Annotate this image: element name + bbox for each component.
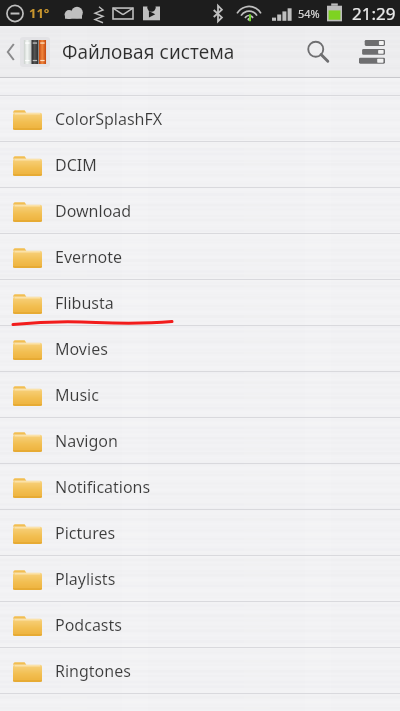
button[interactable]: Evernote	[0, 234, 400, 280]
staticText: Download	[55, 200, 132, 222]
staticText: Ringtones	[55, 660, 131, 682]
button[interactable]: Notifications	[0, 464, 400, 510]
button[interactable]: Pictures	[0, 510, 400, 556]
button[interactable]: Playlists	[0, 556, 400, 602]
button[interactable]: Movies	[0, 326, 400, 372]
button[interactable]: Download	[0, 188, 400, 234]
staticText: Evernote	[55, 246, 123, 268]
staticText: ColorSplashFX	[55, 108, 163, 130]
button[interactable]: Back	[0, 26, 54, 78]
staticText: Movies	[55, 338, 108, 360]
button[interactable]: Podcasts	[0, 602, 400, 648]
staticText: Music	[55, 384, 99, 406]
button[interactable]: Music	[0, 372, 400, 418]
staticText: 54%	[298, 6, 320, 21]
staticText: Navigon	[55, 430, 118, 452]
staticText: Pictures	[55, 522, 116, 544]
staticText: Flibusta	[55, 292, 114, 314]
button[interactable]: ColorSplashFX	[0, 96, 400, 142]
button[interactable]: DCIM	[0, 142, 400, 188]
staticText: Notifications	[55, 476, 151, 498]
staticText: 21:29	[352, 2, 396, 25]
staticText: Playlists	[55, 568, 116, 590]
staticText: 11°	[29, 4, 50, 22]
button[interactable]: Ringtones	[0, 648, 400, 694]
button[interactable]: Navigon	[0, 418, 400, 464]
button[interactable]: Library	[344, 26, 400, 78]
staticText: Файловая система	[62, 39, 292, 65]
button[interactable]: Search	[292, 26, 344, 78]
staticText: Podcasts	[55, 614, 122, 636]
staticText: DCIM	[55, 154, 97, 176]
button[interactable]: Flibusta	[0, 280, 400, 326]
